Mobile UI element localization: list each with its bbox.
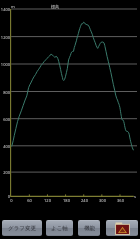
button[interactable]: グラフ変更 — [2, 220, 42, 236]
staticText: 180 — [63, 198, 70, 203]
button[interactable]: 機能 — [78, 220, 100, 236]
staticText: 1400 — [0, 7, 10, 12]
button[interactable]: よこ軸 — [46, 220, 73, 236]
staticText: 0 — [7, 194, 10, 199]
staticText: 400 — [3, 144, 10, 149]
staticText: 0 — [10, 198, 13, 203]
staticText: m — [11, 4, 15, 9]
staticText: 標高 — [51, 4, 59, 9]
staticText: 240 — [81, 198, 88, 203]
staticText: 60 — [27, 198, 32, 203]
staticText: 機能 — [84, 225, 95, 232]
staticText: 600 — [3, 117, 10, 122]
button[interactable]: Saved data — [106, 220, 138, 236]
staticText: 360 — [117, 198, 124, 203]
staticText: 200 — [3, 170, 10, 175]
staticText: よこ軸 — [51, 225, 68, 232]
staticText: 300 — [99, 198, 106, 203]
staticText: 1200 — [0, 35, 10, 40]
staticText: s — [134, 194, 136, 199]
staticText: グラフ変更 — [8, 225, 36, 232]
staticText: 120 — [44, 198, 51, 203]
staticText: 800 — [3, 90, 10, 95]
staticText: 1000 — [0, 62, 10, 67]
